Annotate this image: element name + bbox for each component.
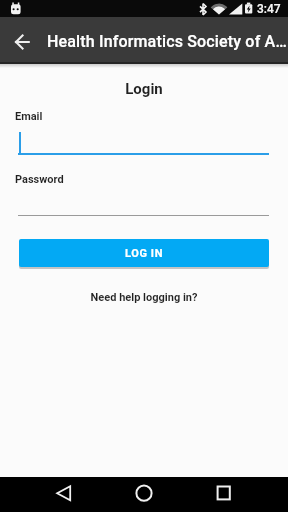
staticText: 3:47 <box>257 2 281 16</box>
button[interactable] <box>44 477 112 512</box>
staticText: Email <box>15 110 43 123</box>
button[interactable] <box>190 477 258 512</box>
button[interactable] <box>0 17 44 62</box>
button[interactable] <box>18 196 269 216</box>
staticText: Login <box>0 80 288 98</box>
button[interactable]: Need help logging in? <box>0 291 288 304</box>
button[interactable] <box>18 128 269 155</box>
staticText: Health Informatics Society of A… <box>47 32 287 51</box>
staticText: Password <box>15 173 64 186</box>
button[interactable] <box>112 477 176 512</box>
staticText: LOG IN <box>125 247 164 260</box>
button[interactable]: LOG IN <box>19 239 269 267</box>
